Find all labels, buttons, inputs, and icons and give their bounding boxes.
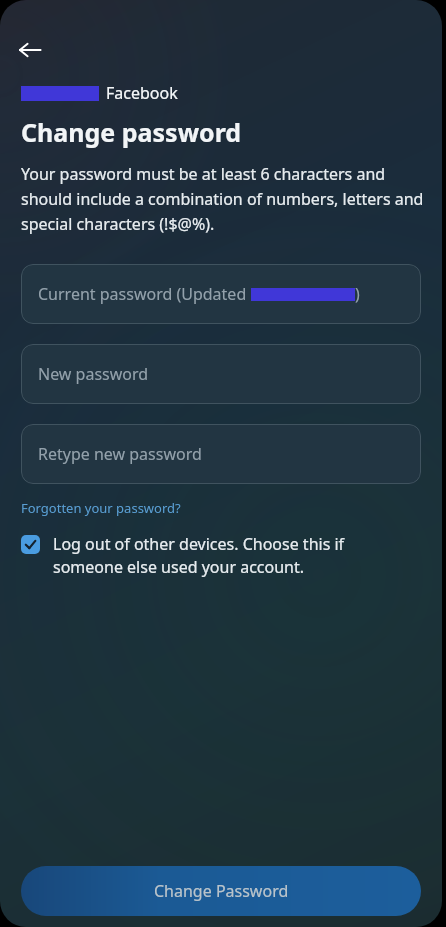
staticText: Current password (Updated <box>38 283 251 305</box>
staticText: New password <box>38 363 149 385</box>
button[interactable]: Current password (Updated <box>21 264 421 324</box>
button[interactable]: Forgotten your password? <box>21 499 181 517</box>
staticText: Facebook <box>106 82 178 104</box>
staticText: Retype new password <box>38 443 202 465</box>
button[interactable]: Retype new password <box>21 424 421 484</box>
staticText: ) <box>355 283 360 305</box>
button[interactable]: New password <box>21 344 421 404</box>
button[interactable]: Back <box>8 28 52 72</box>
button[interactable]: Change Password <box>21 866 421 916</box>
staticText: Change Password <box>154 880 289 902</box>
staticText: Your password must be at least 6 charact… <box>21 163 426 234</box>
button[interactable]: Log out of other devices. Choose this if… <box>0 533 442 578</box>
staticText: Change password <box>21 115 242 149</box>
staticText: Log out of other devices. Choose this if… <box>53 533 402 578</box>
staticText: Forgotten your password? <box>21 499 181 517</box>
